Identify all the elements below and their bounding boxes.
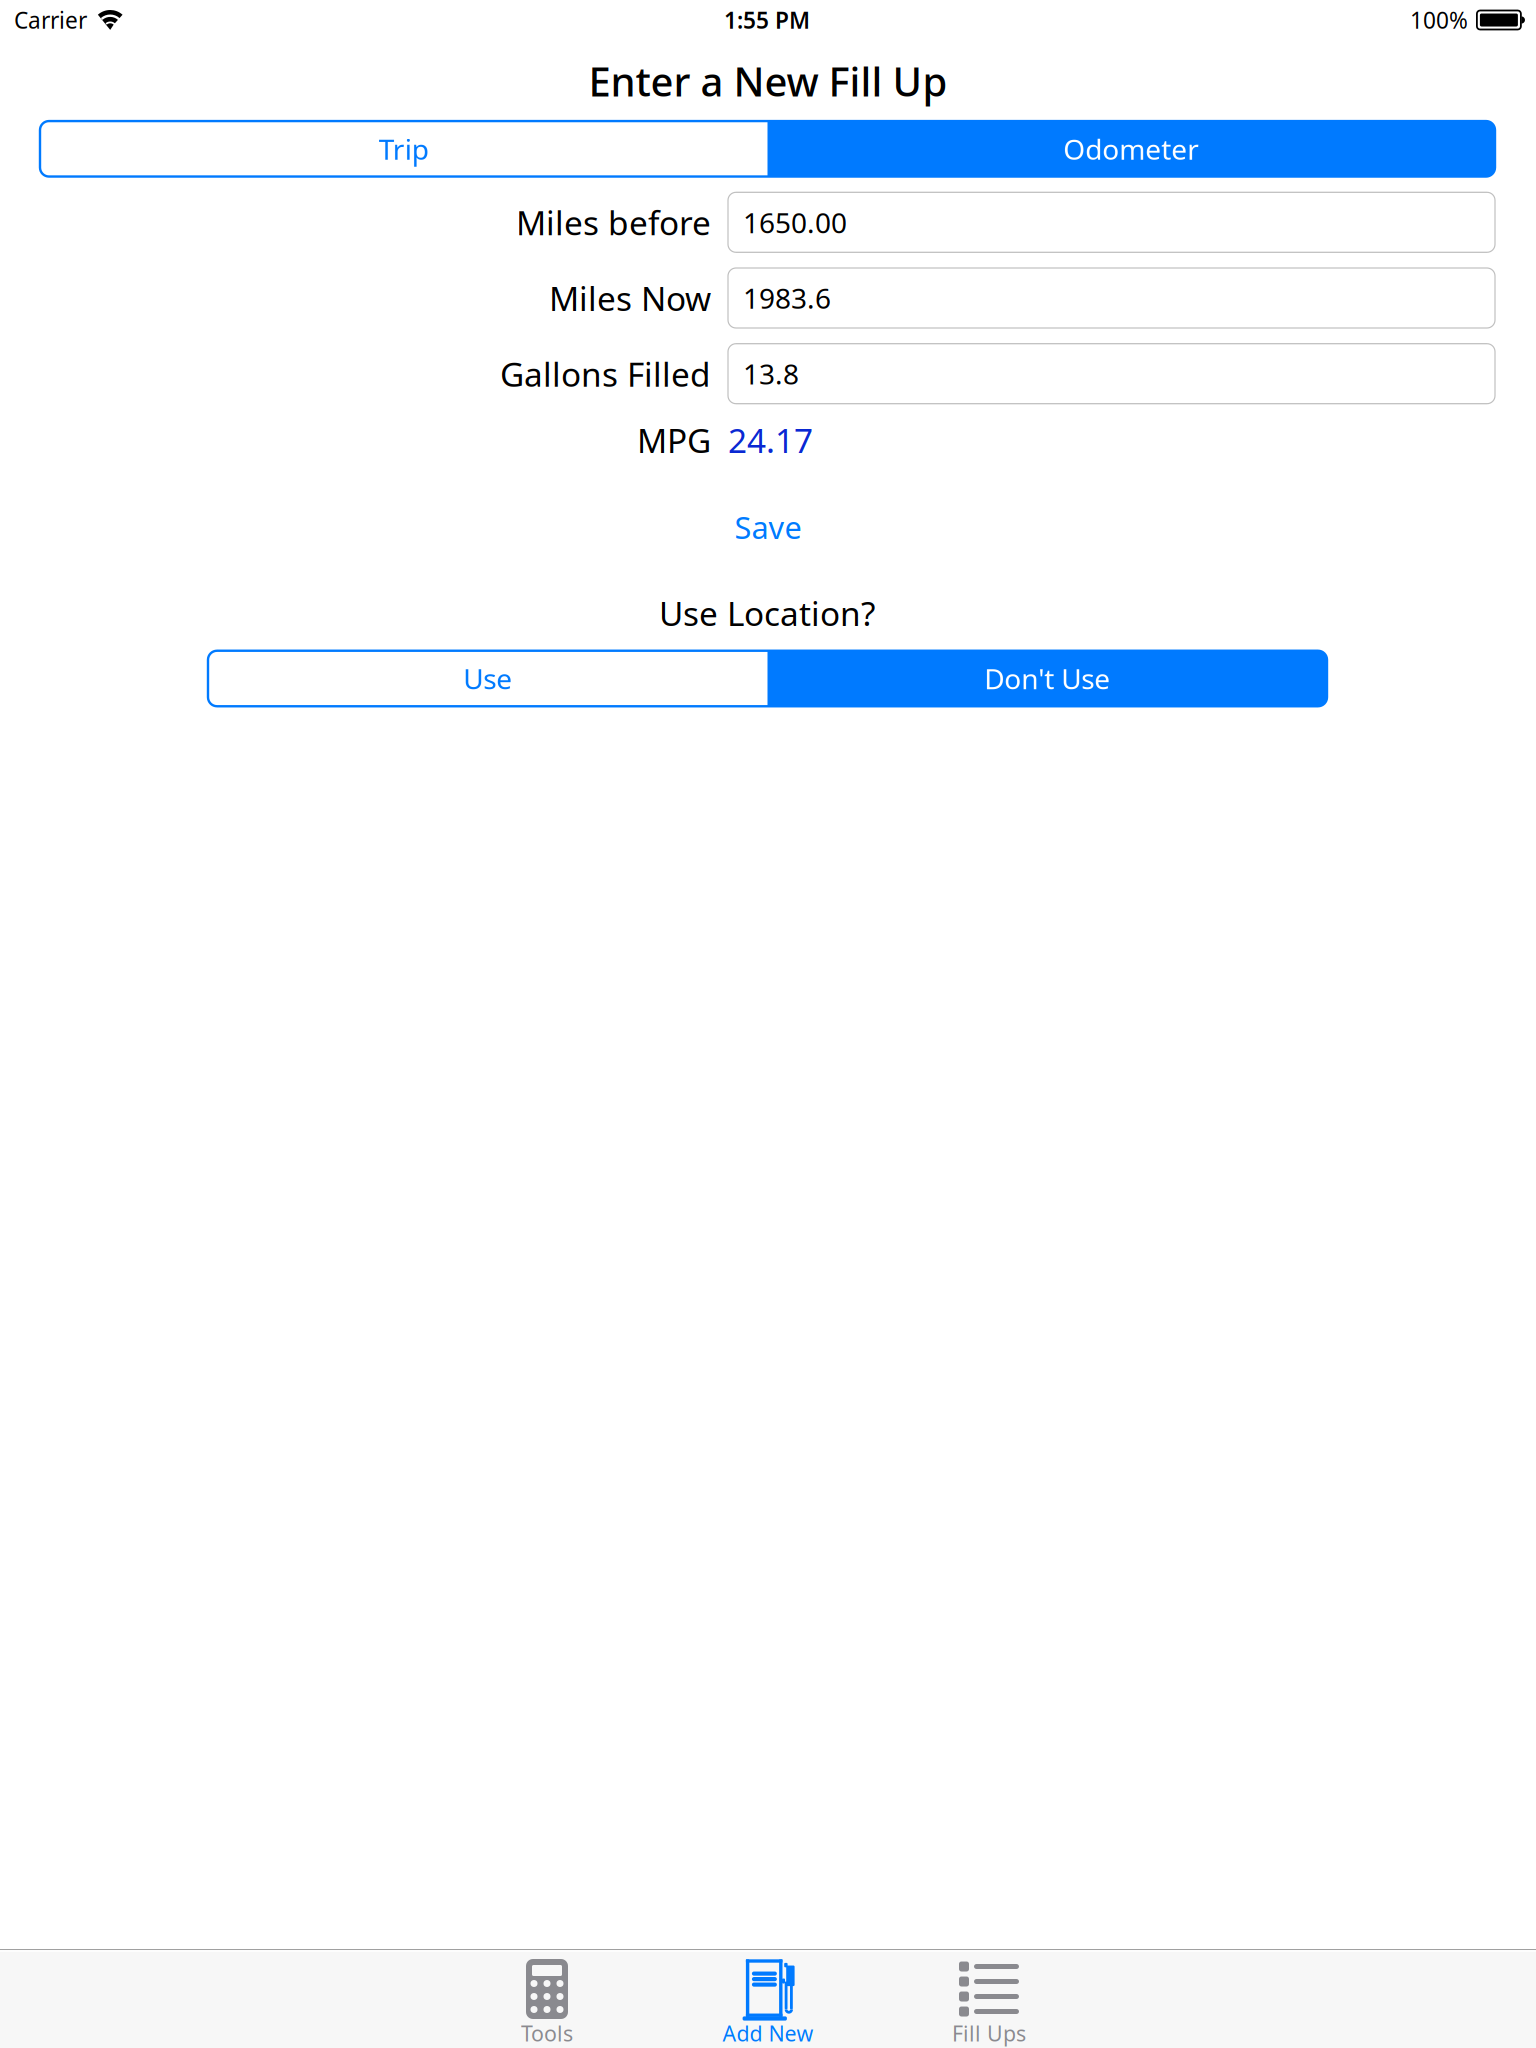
staticText: 1650.00 [743,204,847,241]
button[interactable]: Tools [436,1952,657,2048]
staticText: Use [463,660,512,697]
staticText: MPG [637,418,711,462]
staticText: Carrier [14,5,87,35]
button[interactable]: Add New [657,1952,878,2048]
staticText: Enter a New Fill Up [588,54,947,107]
button[interactable]: 13.8 [728,344,1495,404]
staticText: Odometer [1063,130,1199,167]
staticText: Don't Use [984,660,1110,697]
staticText: Save [734,507,801,547]
button[interactable]: Trip [40,121,767,177]
staticText: 13.8 [743,355,799,392]
staticText: Tools [521,2019,573,2047]
staticText: 1:55 PM [724,5,810,35]
button[interactable]: 1983.6 [728,268,1495,328]
button[interactable]: 1650.00 [728,192,1495,252]
button[interactable]: Don't Use [767,651,1327,706]
staticText: 1983.6 [743,279,831,317]
staticText: 100% [1410,5,1468,35]
staticText: Gallons Filled [500,352,711,396]
staticText: Trip [379,130,429,167]
staticText: Fill Ups [952,2019,1026,2047]
staticText: Miles Now [549,276,711,320]
button[interactable]: Save [688,499,848,555]
button[interactable]: Use [208,651,767,706]
staticText: Miles before [516,200,711,244]
button[interactable]: Odometer [767,121,1495,177]
staticText: Add New [722,2019,813,2047]
staticText: Use Location? [659,591,875,635]
button[interactable]: Fill Ups [878,1952,1099,2048]
staticText: 24.17 [728,418,813,462]
